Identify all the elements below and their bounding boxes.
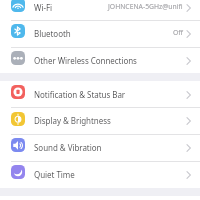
- button[interactable]: Sound & Vibration: [0, 134, 200, 161]
- staticText: Bluetooth: [34, 28, 71, 39]
- staticText: Notification & Status Bar: [34, 89, 126, 100]
- staticText: Display & Brightness: [34, 115, 111, 126]
- button[interactable]: Quiet Time: [0, 161, 200, 188]
- staticText: Quiet Time: [34, 169, 75, 180]
- button[interactable]: Display & Brightness: [0, 107, 200, 134]
- staticText: Off: [173, 28, 183, 37]
- staticText: Other Wireless Connections: [34, 55, 137, 66]
- button[interactable]: Bluetooth: [0, 20, 200, 47]
- button[interactable]: Notification & Status Bar: [0, 81, 200, 107]
- staticText: Sound & Vibration: [34, 142, 102, 153]
- staticText: JOHNCENA-5GHz@unifi: [108, 2, 183, 11]
- button[interactable]: Wi-Fi: [0, 0, 200, 20]
- staticText: Wi-Fi: [34, 2, 53, 13]
- button[interactable]: Other Wireless Connections: [0, 47, 200, 73]
